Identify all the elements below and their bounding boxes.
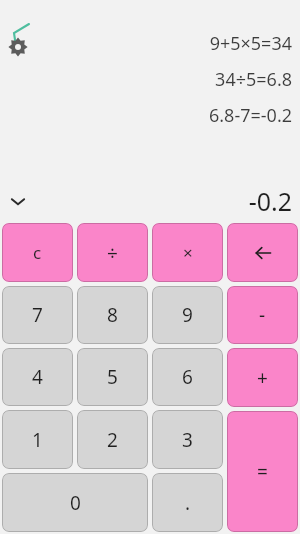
staticText: 2 [107,427,118,453]
button[interactable]: c [2,223,73,282]
staticText: × [183,241,193,264]
button[interactable]: - [227,286,298,344]
staticText: -0.2 [248,184,292,218]
button[interactable]: = [227,411,298,532]
button[interactable]: . [152,473,223,532]
button[interactable]: 1 [2,410,73,469]
staticText: + [257,365,268,391]
staticText: 6.8-7=-0.2 [208,103,292,128]
staticText: 8 [107,302,118,328]
staticText: . [185,490,191,516]
staticText: 4 [32,364,43,390]
button[interactable]: 0 [2,473,148,532]
button[interactable]: 4 [2,348,73,406]
staticText: 7 [32,302,43,328]
button[interactable]: Backspace [227,223,298,282]
staticText: 9+5×5=34 [209,31,292,56]
staticText: = [257,459,268,485]
staticText: 5 [107,364,118,390]
button[interactable]: 5 [77,348,148,406]
button[interactable]: 8 [77,286,148,344]
button[interactable]: ÷ [77,223,148,282]
button[interactable]: Collapse history [3,186,33,216]
button[interactable]: 7 [2,286,73,344]
button[interactable]: 3 [152,410,223,469]
staticText: 9 [182,302,193,328]
staticText: 3 [182,427,193,453]
staticText: 6 [182,364,193,390]
button[interactable]: 6 [152,348,223,406]
staticText: 0 [70,490,81,516]
staticText: 34÷5=6.8 [215,67,292,92]
staticText: - [259,302,266,328]
staticText: c [33,241,42,264]
staticText: 1 [32,427,43,453]
button[interactable]: + [227,348,298,407]
staticText: ÷ [107,240,118,266]
button[interactable]: 2 [77,410,148,469]
button[interactable]: Settings [1,19,43,61]
button[interactable]: 9 [152,286,223,344]
button[interactable]: × [152,223,223,282]
